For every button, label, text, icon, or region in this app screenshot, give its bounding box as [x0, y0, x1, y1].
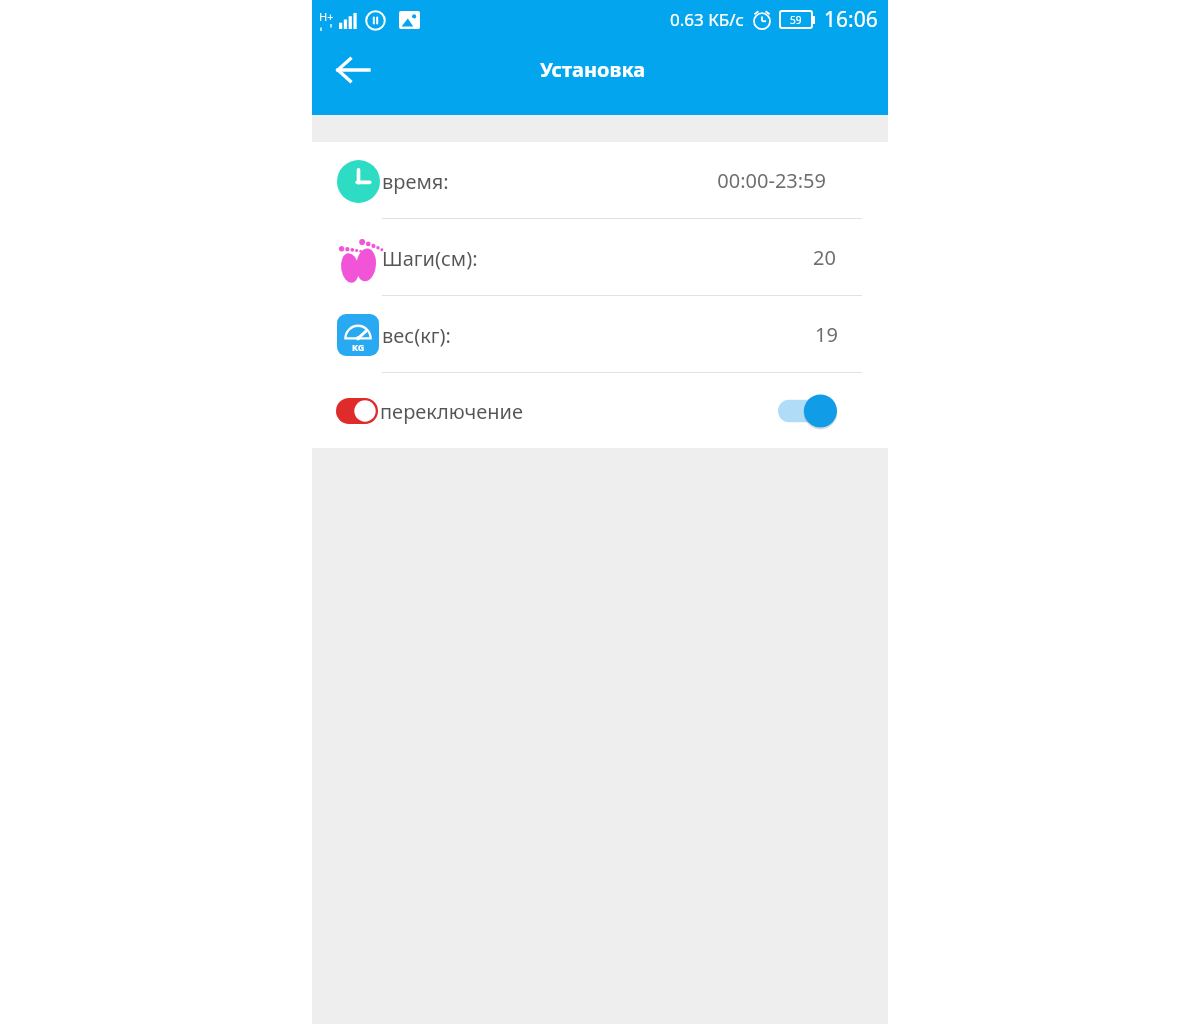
button[interactable]: KG	[312, 296, 888, 373]
staticText: переключение	[380, 398, 523, 425]
button[interactable]: Шаги(см):	[312, 219, 888, 296]
staticText: 16:06	[824, 5, 878, 34]
staticText: H+	[319, 9, 334, 24]
staticText: 59	[790, 13, 802, 27]
staticText: 00:00-23:59	[717, 167, 826, 194]
button[interactable]: Back	[322, 39, 384, 101]
button[interactable]: Toggle switch	[776, 390, 840, 432]
staticText: KG	[352, 341, 365, 353]
staticText: вес(кг):	[382, 322, 451, 349]
staticText: Шаги(см):	[382, 245, 478, 272]
staticText: Установка	[540, 56, 646, 83]
staticText: 19	[815, 321, 838, 348]
button[interactable]: переключение	[312, 373, 888, 448]
staticText: 20	[813, 244, 836, 271]
staticText: время:	[382, 168, 449, 195]
staticText: 0.63 КБ/с	[670, 8, 744, 31]
button[interactable]: время:	[312, 142, 888, 219]
